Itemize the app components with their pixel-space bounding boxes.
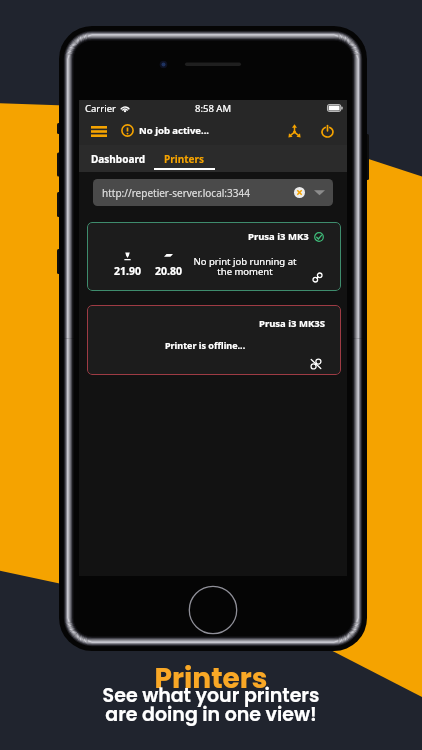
button[interactable]: Prusa i3 MK3 [87,222,341,291]
staticText: See what your printers are doing in one … [0,682,422,728]
staticText: 8:58 AM [195,102,232,115]
button[interactable]: http://repetier-server.local:3344 [93,179,333,206]
staticText: Printers [0,659,422,698]
button[interactable]: Connected [311,271,324,284]
staticText: 20.80 [155,264,182,278]
button[interactable]: Disconnected [309,357,322,370]
staticText: 21.90 [114,264,141,278]
button[interactable]: Prusa i3 MK3S [87,305,341,375]
button[interactable]: Dashboard [83,147,153,171]
staticText: Printer is offline... [165,339,246,351]
staticText: Prusa i3 MK3S [259,317,325,330]
staticText: Carrier [85,102,116,115]
staticText: No job active... [139,124,210,137]
button[interactable]: Home all axes [283,120,305,142]
button[interactable]: Open navigation menu [88,120,110,142]
staticText: Dashboard [91,152,145,166]
staticText: Printers [164,152,204,166]
staticText: http://repetier-server.local:3344 [102,186,250,200]
staticText: No print job running at the moment [181,255,309,277]
staticText: Prusa i3 MK3 [248,230,309,243]
button[interactable]: Power [316,120,338,142]
button[interactable]: Printers [156,147,212,171]
